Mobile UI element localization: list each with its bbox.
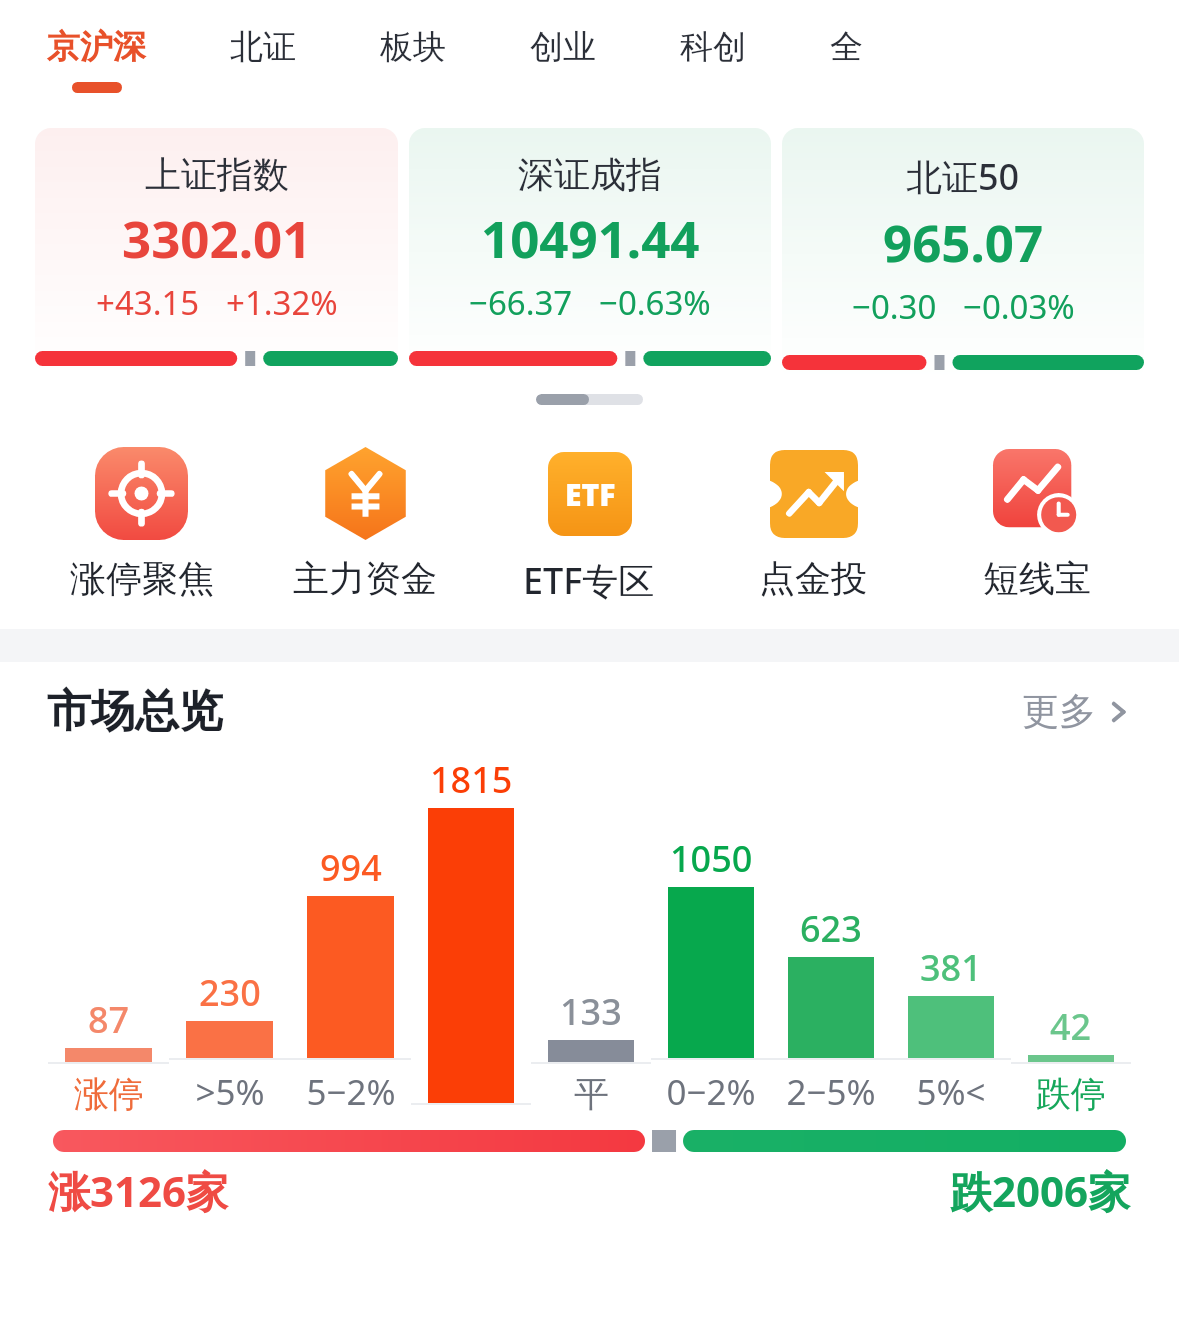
staticText: 板块 [380,26,446,68]
button[interactable]: 主力资金 [253,447,477,601]
staticText: 市场总览 [47,684,223,739]
staticText: −0.03% [963,284,1075,329]
staticText: ETF专区 [523,556,655,605]
staticText: 42 [1050,1002,1092,1051]
button[interactable]: 涨停聚焦 [30,447,253,601]
staticText: 京沪深 [47,26,146,68]
button[interactable]: 全 [830,0,863,82]
staticText: +1.32% [226,280,338,325]
staticText: 北证 [230,26,296,68]
staticText: 1050 [670,834,753,883]
staticText: 10491.44 [481,203,700,272]
staticText: 平 [574,1072,609,1116]
staticText: 创业 [530,26,596,68]
staticText: −66.37 [469,280,573,325]
staticText: 0−2% [666,1068,756,1116]
button[interactable]: 87 [48,995,169,1116]
staticText: 1815 [430,755,513,804]
button[interactable]: ETF专区 [477,447,701,605]
button[interactable]: 230 [169,968,290,1116]
staticText: 点金投 [759,556,867,601]
staticText: 965.07 [883,207,1044,276]
staticText: 深证成指 [518,152,662,197]
staticText: 跌2006家 [950,1162,1131,1219]
staticText: 更多 [1022,688,1096,735]
staticText: +43.15 [96,280,200,325]
button[interactable]: 994 [290,843,411,1116]
button[interactable]: 科创 [680,0,746,82]
button[interactable]: 板块 [380,0,446,82]
staticText: 短线宝 [983,556,1091,601]
button[interactable]: 创业 [530,0,596,82]
staticText: >5% [195,1068,265,1116]
staticText: 133 [560,987,622,1036]
staticText: 北证50 [906,152,1020,201]
button[interactable]: 623 [771,904,891,1116]
button[interactable]: 133 [531,987,651,1116]
staticText: 涨停 [74,1072,144,1116]
staticText: 上证指数 [145,152,289,197]
staticText: 涨3126家 [48,1162,229,1219]
button[interactable]: 上证指数 [35,128,398,376]
staticText: 623 [800,904,862,953]
staticText: 5−2% [306,1068,396,1116]
button[interactable]: 短线宝 [925,447,1149,601]
button[interactable]: 381 [891,943,1011,1116]
staticText: 2−5% [786,1068,876,1116]
button[interactable]: 1050 [651,834,771,1116]
staticText: 994 [320,843,382,892]
button[interactable]: 北证50 [782,128,1144,380]
button[interactable]: 京沪深 [47,0,146,93]
button[interactable]: 深证成指 [409,128,771,376]
button[interactable]: 北证 [230,0,296,82]
staticText: 全 [830,26,863,68]
staticText: 跌停 [1036,1072,1106,1116]
staticText: −0.63% [599,280,711,325]
staticText: 3302.01 [122,203,312,272]
staticText: 230 [199,968,261,1017]
staticText: 87 [88,995,130,1044]
staticText: 涨停聚焦 [70,556,214,601]
staticText: −0.30 [852,284,937,329]
button[interactable]: 更多 [1022,688,1132,735]
button[interactable]: 点金投 [701,447,925,601]
staticText: 381 [920,943,982,992]
button[interactable]: 1815 [411,755,531,1116]
staticText: 主力资金 [293,556,437,601]
staticText: ETF [565,474,616,515]
button[interactable]: 42 [1011,1002,1131,1116]
staticText: 科创 [680,26,746,68]
staticText: 5%< [916,1068,986,1116]
